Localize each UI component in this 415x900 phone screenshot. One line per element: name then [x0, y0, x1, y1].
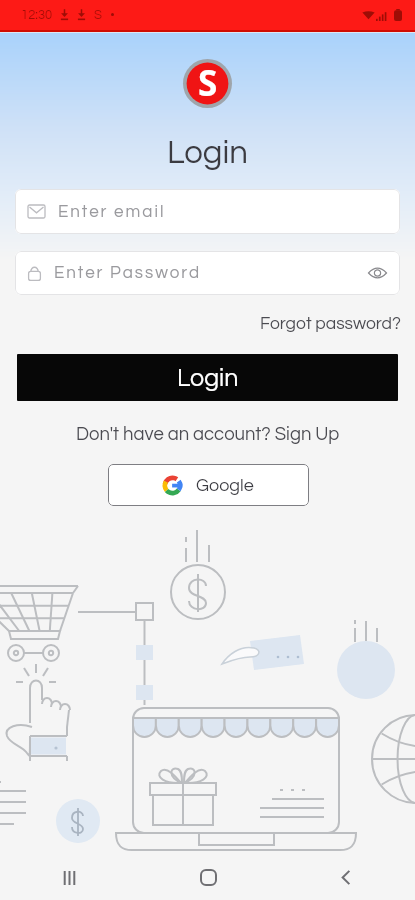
staticText: Login	[167, 136, 248, 170]
button[interactable]: Forgot password?	[260, 312, 415, 336]
button[interactable]: Recent apps	[0, 855, 139, 900]
button[interactable]: Show password	[368, 267, 387, 279]
staticText: S	[94, 8, 102, 21]
button[interactable]: Home	[139, 855, 277, 900]
button[interactable]: Back	[277, 855, 415, 900]
staticText: Enter email	[58, 203, 387, 221]
button[interactable]: Enter email	[15, 189, 400, 234]
button[interactable]: Google	[108, 464, 309, 506]
staticText: Don't have an account? Sign Up	[76, 425, 340, 444]
button[interactable]: Don't have an account? Sign Up	[72, 422, 344, 447]
button[interactable]: Enter Password	[15, 251, 400, 295]
button[interactable]: Login	[17, 354, 398, 401]
button[interactable]: App logo	[183, 59, 232, 108]
staticText: Google	[196, 476, 254, 495]
staticText: Login	[177, 365, 239, 391]
staticText: S	[198, 59, 218, 107]
staticText: Enter Password	[54, 264, 368, 282]
staticText: 12:30	[21, 8, 53, 21]
